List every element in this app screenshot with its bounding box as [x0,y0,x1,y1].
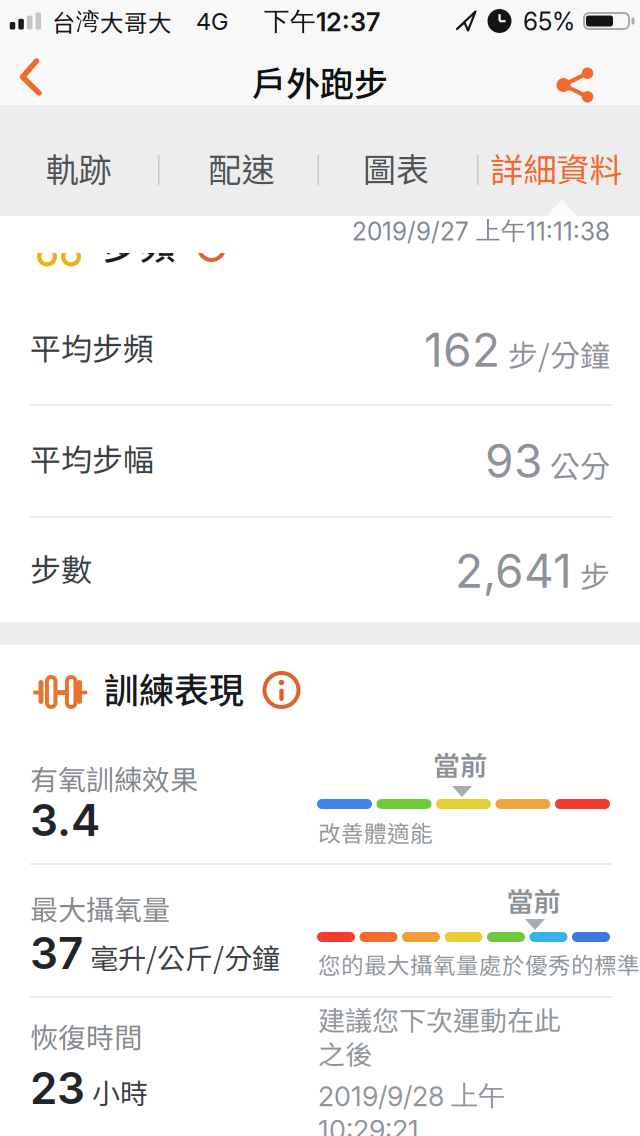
staticText: 93 [485,433,542,489]
staticText: 戶外跑步 [252,57,388,106]
staticText: 步/分鐘 [508,332,610,375]
staticText: 恢復時間 [30,1016,142,1056]
staticText: 37 [30,926,83,980]
staticText: 2019/9/28 上午 [318,1079,505,1113]
staticText: 平均步幅 [30,436,154,480]
staticText: 最大攝氧量 [30,888,170,928]
staticText: 您的最大攝氧量處於優秀的標準 [318,948,640,980]
staticText: 之後 [318,1033,372,1073]
staticText: 162 [424,322,500,378]
staticText: 改善體適能 [318,816,433,848]
staticText: 有氧訓練效果 [30,758,198,798]
staticText: 2019/9/27 上午11:11:38 [352,216,610,246]
staticText: 訓練表現 [104,663,244,713]
button[interactable] [556,60,606,110]
staticText: 步數 [30,546,92,590]
button[interactable]: 軌跡 [0,117,156,217]
button[interactable]: 詳細資料 [478,117,634,217]
staticText: 配速 [208,144,274,191]
staticText: 台湾大哥大 [52,4,172,38]
staticText: 步頻 [103,218,175,270]
staticText: 4G [196,7,228,36]
button[interactable]: 配速 [163,117,319,217]
staticText: 3.4 [30,793,100,847]
staticText: 公分 [550,443,610,486]
staticText: 建議您下次運動在此 [318,999,561,1039]
staticText: 23 [30,1061,85,1115]
staticText: 當前 [506,880,560,920]
staticText: 詳細資料 [490,144,622,191]
staticText: 10:29:21 [318,1114,419,1136]
staticText: 軌跡 [45,144,111,191]
staticText: 步 [580,553,610,596]
staticText: 當前 [433,744,487,784]
staticText: 平均步頻 [30,325,154,369]
button[interactable] [7,52,51,102]
staticText: 毫升/公斤/分鐘 [90,936,280,977]
button[interactable] [259,668,303,712]
staticText: 圖表 [363,144,429,191]
staticText: 小時 [92,1071,148,1112]
staticText: 2,641 [455,543,572,599]
button[interactable]: 圖表 [318,117,474,217]
staticText: 下午12:37 [264,5,380,37]
staticText: 65% [523,7,575,36]
